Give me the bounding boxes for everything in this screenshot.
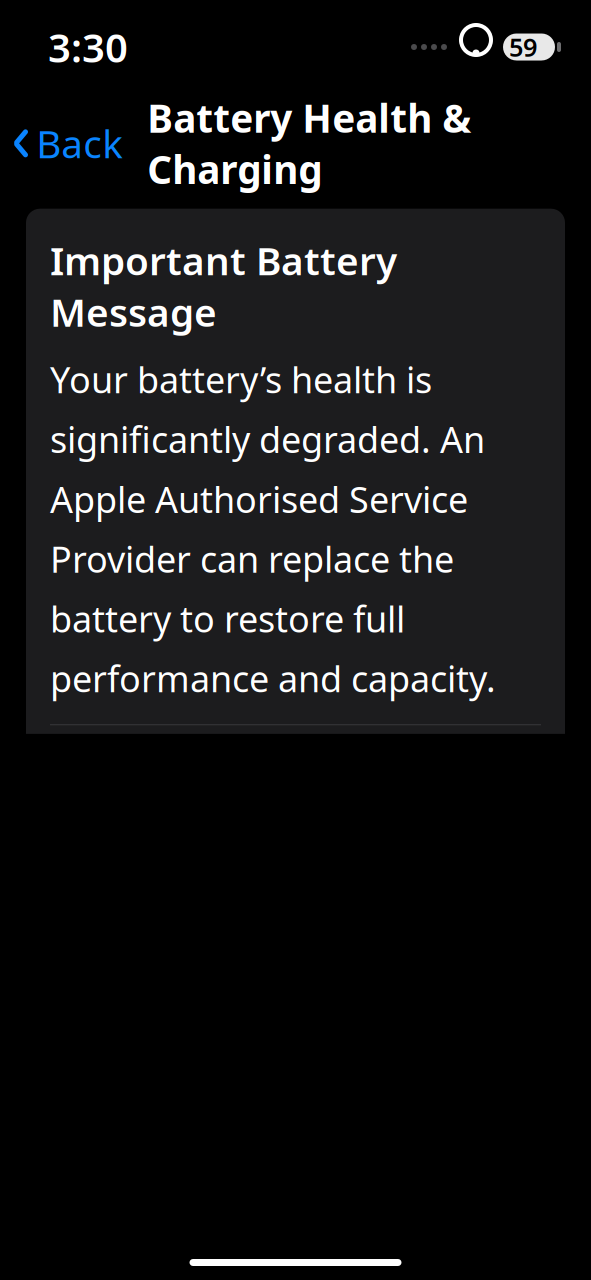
button[interactable]: Back	[0, 110, 129, 177]
staticText: Your battery’s health is significantly d…	[50, 355, 496, 702]
staticText: This is a measure of battery capacity re…	[50, 993, 522, 1262]
staticText: Important Battery Message	[50, 235, 397, 337]
staticText: Back	[36, 118, 123, 169]
staticText: 59	[509, 30, 537, 64]
staticText: 3:30	[48, 20, 128, 73]
staticText: Battery Health & Charging	[147, 92, 471, 195]
